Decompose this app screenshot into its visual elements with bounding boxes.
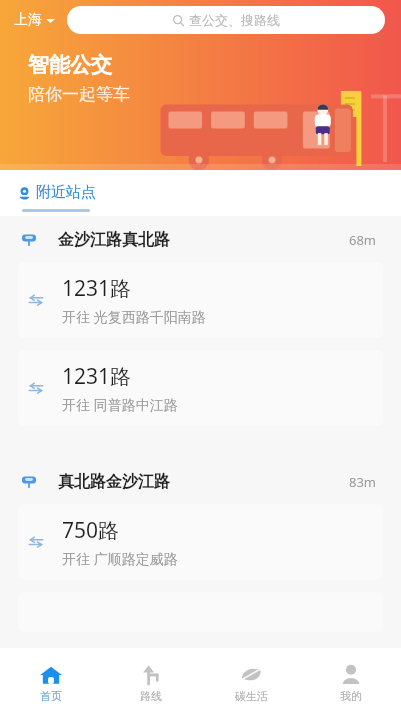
staticText: 首页 — [40, 689, 62, 703]
button[interactable]: 附近站点 — [18, 183, 96, 202]
staticText: 开往 同普路中江路 — [62, 395, 178, 414]
staticText: 上海 — [14, 11, 42, 29]
button[interactable]: 真北路金沙江路 — [0, 458, 401, 504]
staticText: 碳生活 — [235, 689, 268, 703]
staticText: 路线 — [140, 689, 162, 703]
staticText: 750路 — [62, 516, 120, 545]
button[interactable]: 1231路 — [18, 350, 383, 426]
button[interactable]: 金沙江路真北路 — [0, 216, 401, 262]
staticText: 附近站点 — [36, 183, 96, 202]
staticText: 1231路 — [62, 362, 132, 391]
staticText: 开往 广顺路定威路 — [62, 549, 178, 568]
staticText: 我的 — [340, 689, 362, 703]
staticText: 金沙江路真北路 — [58, 230, 170, 250]
staticText: 83m — [349, 473, 377, 491]
staticText: 查公交、搜路线 — [189, 12, 280, 28]
button[interactable]: 查公交、搜路线 — [67, 6, 385, 34]
button[interactable]: 路线 — [101, 655, 201, 703]
staticText: 真北路金沙江路 — [58, 472, 170, 492]
staticText: 开往 光复西路千阳南路 — [62, 307, 206, 326]
staticText: 68m — [349, 231, 377, 249]
staticText: 1231路 — [62, 274, 132, 303]
staticText: 智能公交 — [28, 52, 112, 78]
button[interactable]: 首页 — [0, 655, 101, 703]
staticText: 陪你一起等车 — [28, 84, 130, 105]
button[interactable]: 750路 — [18, 504, 383, 580]
button[interactable]: 我的 — [301, 655, 401, 703]
button[interactable]: 上海 — [12, 7, 57, 33]
button[interactable]: 1231路 — [18, 262, 383, 338]
button[interactable]: 碳生活 — [201, 655, 301, 703]
